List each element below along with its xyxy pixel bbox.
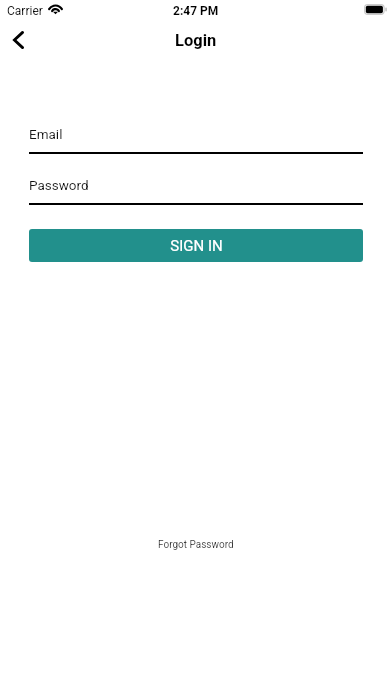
staticText: Forgot Password <box>158 539 234 551</box>
staticText: Login <box>175 31 217 50</box>
staticText: 2:47 PM <box>173 4 219 18</box>
button[interactable]: Forgot Password <box>0 535 392 555</box>
button[interactable]: Back <box>4 26 32 54</box>
staticText: Password <box>29 177 89 193</box>
button[interactable]: Email <box>29 120 363 154</box>
staticText: Carrier <box>7 4 43 18</box>
button[interactable]: SIGN IN <box>29 229 363 262</box>
staticText: SIGN IN <box>170 237 223 255</box>
button[interactable]: Password <box>29 171 363 205</box>
staticText: Email <box>29 126 63 142</box>
